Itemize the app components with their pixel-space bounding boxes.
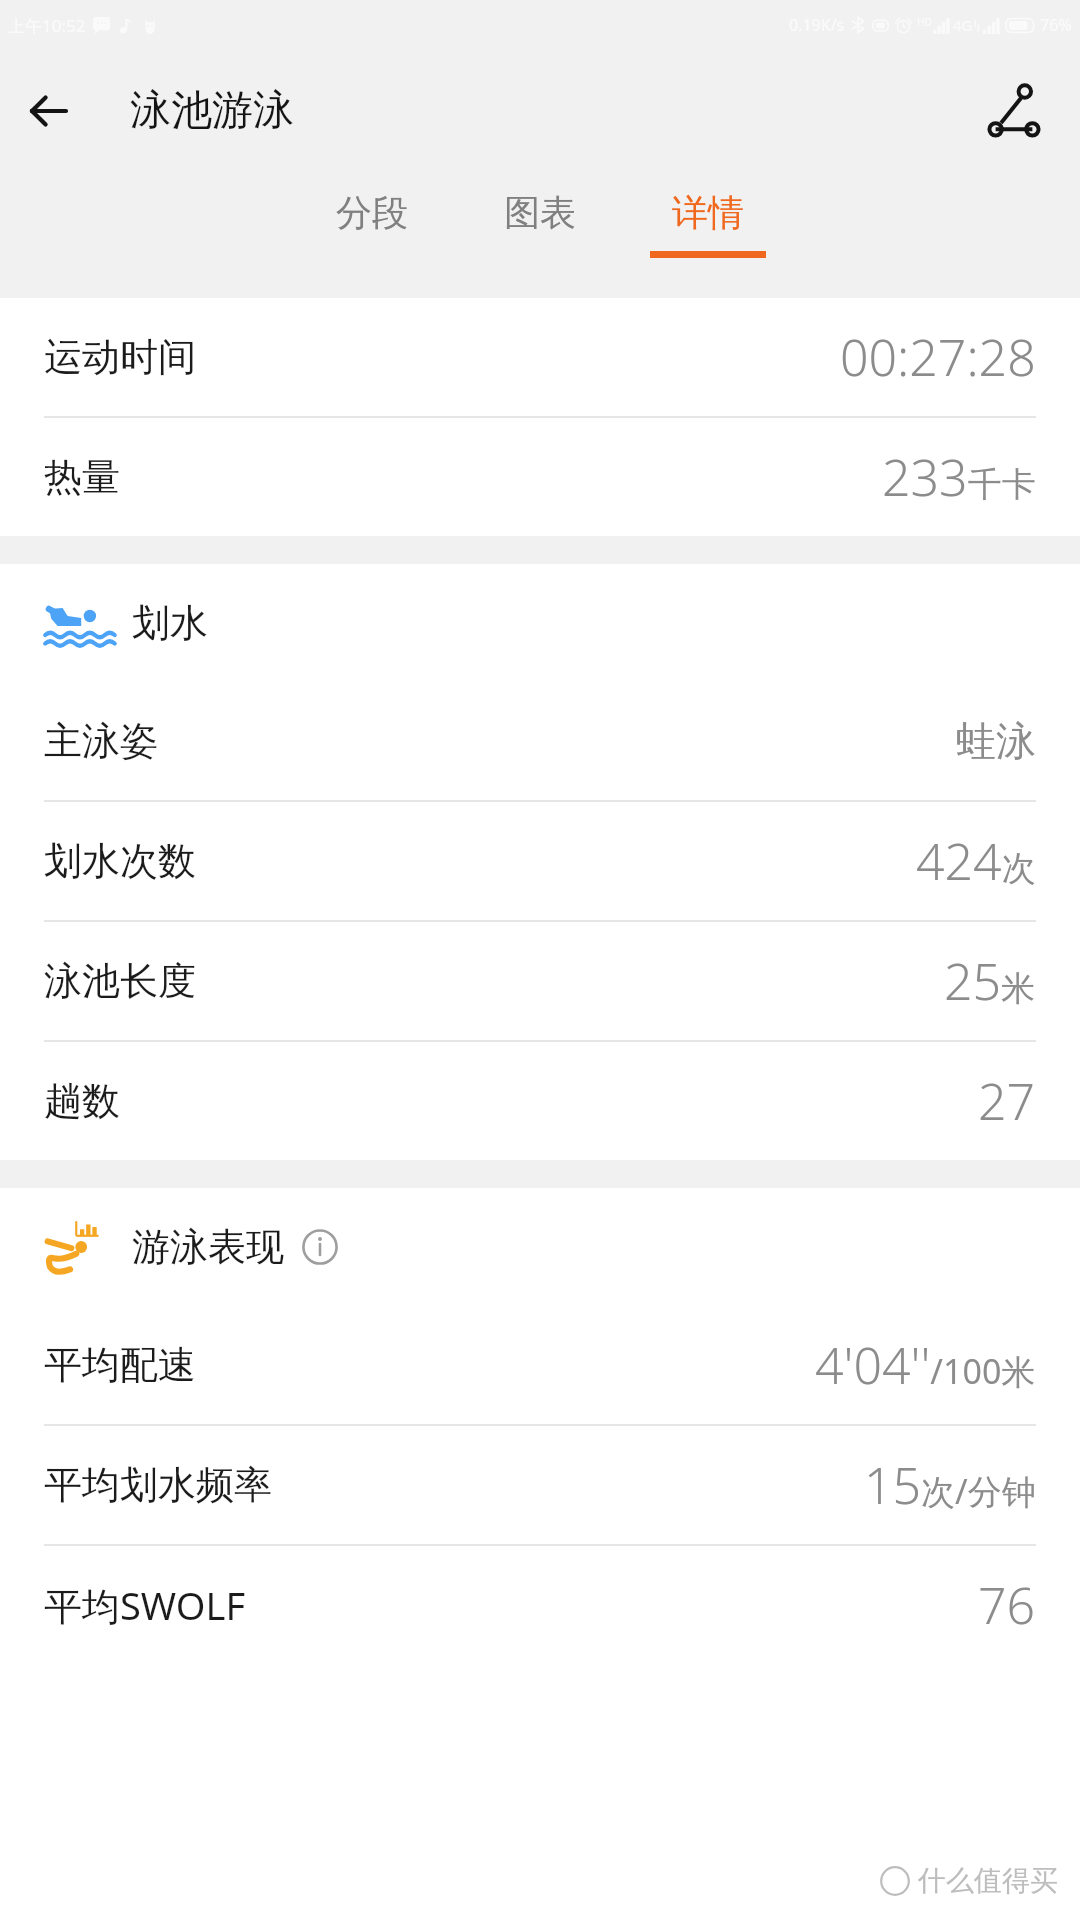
button[interactable]: 趟数 — [0, 1042, 1080, 1160]
button[interactable]: 平均SWOLF — [0, 1546, 1080, 1664]
staticText: 平均划水频率 — [44, 1461, 272, 1509]
staticText: 主泳姿 — [44, 717, 158, 765]
button[interactable]: 划水 — [0, 564, 1080, 682]
staticText: 25米 — [944, 947, 1036, 1015]
staticText: 运动时间 — [44, 333, 196, 381]
staticText: 4'04''/100米 — [815, 1331, 1036, 1399]
button[interactable]: 详情 — [640, 172, 776, 258]
button[interactable]: 热量 — [0, 418, 1080, 536]
staticText: 76% — [1040, 14, 1072, 36]
staticText: 上午10:52 — [8, 14, 86, 37]
button[interactable]: 游泳表现 — [0, 1188, 1080, 1306]
staticText: 什么值得买 — [918, 1863, 1058, 1898]
staticText: 424次 — [916, 827, 1036, 895]
button[interactable]: 平均配速 — [0, 1306, 1080, 1424]
staticText: 详情 — [672, 190, 744, 235]
staticText: 27 — [978, 1067, 1036, 1135]
staticText: 00:27:28 — [840, 323, 1036, 391]
button[interactable]: 图表 — [472, 172, 608, 258]
staticText: 游泳表现 — [132, 1223, 284, 1271]
staticText: 分段 — [336, 190, 408, 235]
staticText: HD — [917, 15, 932, 29]
staticText: 0.19K/s — [789, 14, 845, 36]
button[interactable]: 划水次数 — [0, 802, 1080, 920]
staticText: 平均配速 — [44, 1341, 196, 1389]
staticText: 划水 — [132, 599, 208, 647]
staticText: 平均SWOLF — [44, 1579, 246, 1631]
staticText: 趟数 — [44, 1077, 120, 1125]
button[interactable]: Share — [974, 71, 1054, 151]
button[interactable]: 平均划水频率 — [0, 1426, 1080, 1544]
button[interactable]: 运动时间 — [0, 298, 1080, 416]
button[interactable]: 泳池长度 — [0, 922, 1080, 1040]
staticText: 蛙泳 — [956, 716, 1036, 766]
staticText: 233千卡 — [882, 443, 1036, 511]
button[interactable]: 主泳姿 — [0, 682, 1080, 800]
staticText: 4G — [953, 15, 973, 35]
staticText: 热量 — [44, 453, 120, 501]
staticText: 76 — [978, 1571, 1036, 1639]
staticText: 泳池游泳 — [130, 85, 294, 137]
staticText: 15次/分钟 — [864, 1451, 1036, 1519]
staticText: 图表 — [504, 190, 576, 235]
button[interactable]: Back — [16, 79, 80, 143]
button[interactable]: 分段 — [304, 172, 440, 258]
staticText: 泳池长度 — [44, 957, 196, 1005]
staticText: 划水次数 — [44, 837, 196, 885]
